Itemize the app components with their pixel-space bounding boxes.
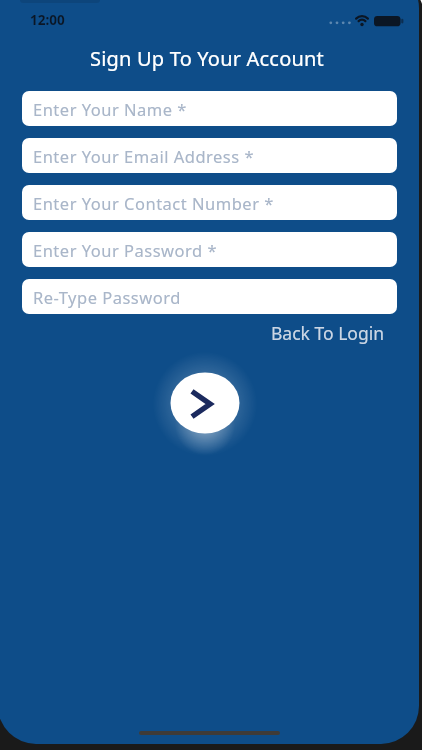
staticText: Enter Your Name * (33, 98, 187, 120)
button[interactable]: Enter Your Contact Number * (22, 185, 397, 220)
staticText: Sign Up To Your Account (90, 45, 324, 72)
button[interactable]: Re-Type Password (22, 279, 397, 314)
button[interactable]: Enter Your Password * (22, 232, 397, 267)
staticText: Back To Login (271, 321, 384, 345)
button[interactable]: Back To Login (271, 321, 384, 345)
staticText: Enter Your Email Address * (33, 145, 255, 167)
button[interactable]: Enter Your Name * (22, 91, 397, 126)
staticText: Re-Type Password (33, 286, 181, 308)
button[interactable] (155, 353, 255, 453)
staticText: Enter Your Password * (33, 239, 218, 261)
staticText: 12:00 (30, 11, 65, 29)
staticText: Enter Your Contact Number * (33, 192, 274, 214)
button[interactable]: Enter Your Email Address * (22, 138, 397, 173)
